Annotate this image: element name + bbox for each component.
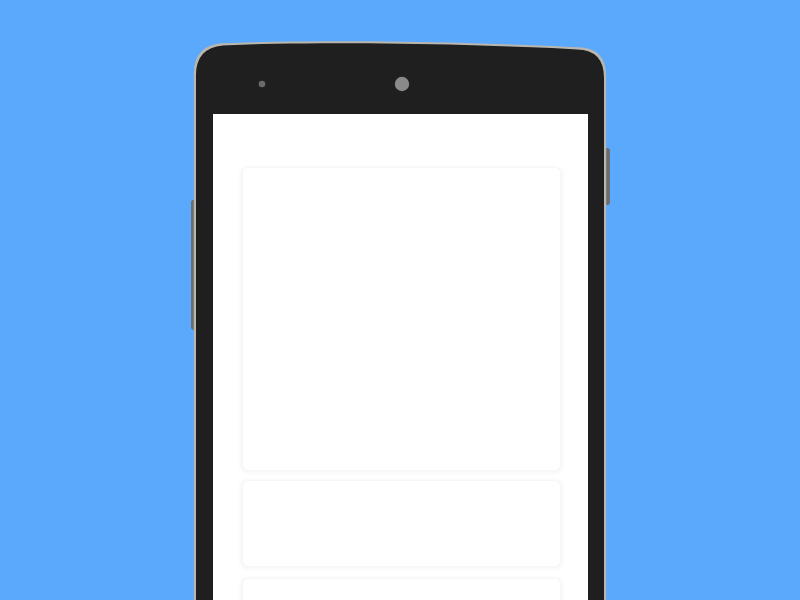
button[interactable]: Phone mockup with card list bbox=[0, 0, 800, 600]
